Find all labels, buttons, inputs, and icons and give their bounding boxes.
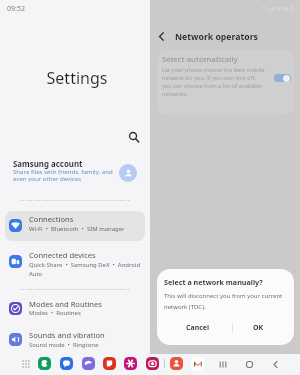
button[interactable]: Navigate up — [153, 28, 170, 45]
button[interactable]: OK — [238, 320, 278, 336]
staticText: Connected devices — [29, 250, 96, 260]
button[interactable]: Gmail — [191, 357, 204, 370]
staticText: 09:52 — [7, 4, 25, 14]
staticText: Network operators — [175, 31, 258, 43]
button[interactable]: Home — [242, 357, 256, 371]
staticText: Sound mode • Ringtone — [29, 341, 145, 349]
button[interactable] — [5, 325, 145, 355]
staticText: Modes and Routines — [29, 299, 102, 309]
button[interactable] — [5, 155, 145, 190]
staticText: Cancel — [186, 323, 210, 333]
staticText: Connections — [29, 214, 74, 224]
button[interactable]: App — [170, 357, 183, 370]
button[interactable]: Account — [119, 164, 137, 182]
button[interactable]: App — [38, 357, 51, 370]
staticText: Quick Share • Samsung DeX • Android Auto — [29, 261, 145, 277]
button[interactable]: Recents — [215, 357, 229, 371]
button[interactable] — [274, 74, 291, 82]
button[interactable]: App — [124, 357, 137, 370]
staticText: Select a network manually? — [164, 277, 263, 287]
staticText: Settings — [2, 67, 152, 89]
staticText: Modes • Routines — [29, 309, 145, 317]
staticText: Wi-Fi • Bluetooth • SIM manager — [29, 225, 145, 233]
button[interactable]: App — [146, 357, 159, 370]
button[interactable] — [5, 246, 145, 276]
button[interactable]: Apps — [19, 357, 32, 370]
button[interactable]: App — [60, 357, 73, 370]
button[interactable]: Cancel — [178, 320, 218, 336]
staticText: Sounds and vibration — [29, 330, 105, 340]
button[interactable]: Back — [268, 357, 282, 371]
button[interactable]: App — [103, 357, 116, 370]
button[interactable] — [5, 293, 145, 323]
staticText: This will disconnect you from your curre… — [164, 292, 288, 311]
staticText: Samsung account — [13, 159, 83, 170]
button[interactable]: Search — [125, 128, 143, 146]
button[interactable]: App — [82, 357, 95, 370]
staticText: OK — [253, 323, 264, 333]
staticText: Share files with friends, family, and ev… — [13, 167, 113, 183]
button[interactable] — [5, 210, 145, 240]
staticText: 51% — [277, 5, 289, 13]
button[interactable]: Select automatically — [157, 50, 294, 115]
staticText: Let your phone choose the best mobile ne… — [162, 66, 266, 98]
staticText: Select automatically — [162, 54, 238, 65]
